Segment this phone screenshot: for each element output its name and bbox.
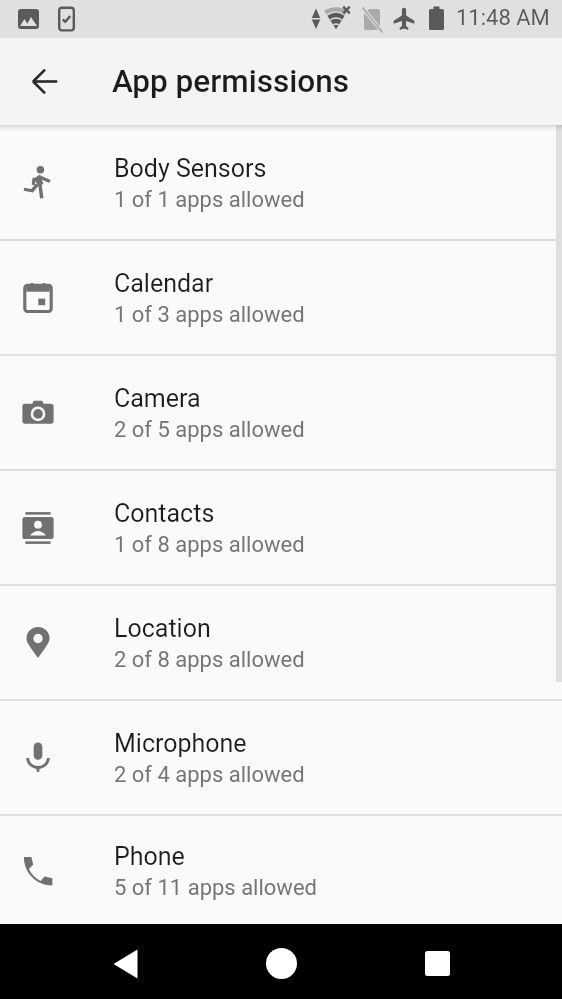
- button[interactable]: Microphone: [0, 701, 562, 814]
- button[interactable]: Home: [210, 924, 350, 999]
- staticText: Camera: [114, 384, 201, 413]
- staticText: Location: [114, 614, 211, 643]
- staticText: 1 of 8 apps allowed: [114, 532, 305, 558]
- button[interactable]: Calendar: [0, 241, 562, 354]
- staticText: App permissions: [112, 63, 350, 100]
- button[interactable]: Navigate up: [0, 38, 80, 125]
- button[interactable]: Location: [0, 586, 562, 699]
- staticText: Body Sensors: [114, 154, 267, 183]
- button[interactable]: Phone: [0, 816, 562, 925]
- staticText: Phone: [114, 842, 185, 871]
- button[interactable]: Recent apps: [367, 924, 507, 999]
- staticText: Microphone: [114, 729, 247, 758]
- staticText: 1 of 1 apps allowed: [114, 187, 305, 213]
- staticText: 2 of 5 apps allowed: [114, 417, 305, 443]
- staticText: 2 of 8 apps allowed: [114, 647, 305, 673]
- button[interactable]: Camera: [0, 356, 562, 469]
- staticText: Calendar: [114, 269, 214, 298]
- button[interactable]: Back: [55, 924, 195, 999]
- staticText: 11:48 AM: [456, 5, 550, 31]
- staticText: 5 of 11 apps allowed: [114, 875, 317, 901]
- staticText: 2 of 4 apps allowed: [114, 762, 305, 788]
- button[interactable]: Body Sensors: [0, 126, 562, 239]
- staticText: Contacts: [114, 499, 215, 528]
- staticText: 1 of 3 apps allowed: [114, 302, 305, 328]
- button[interactable]: Contacts: [0, 471, 562, 584]
